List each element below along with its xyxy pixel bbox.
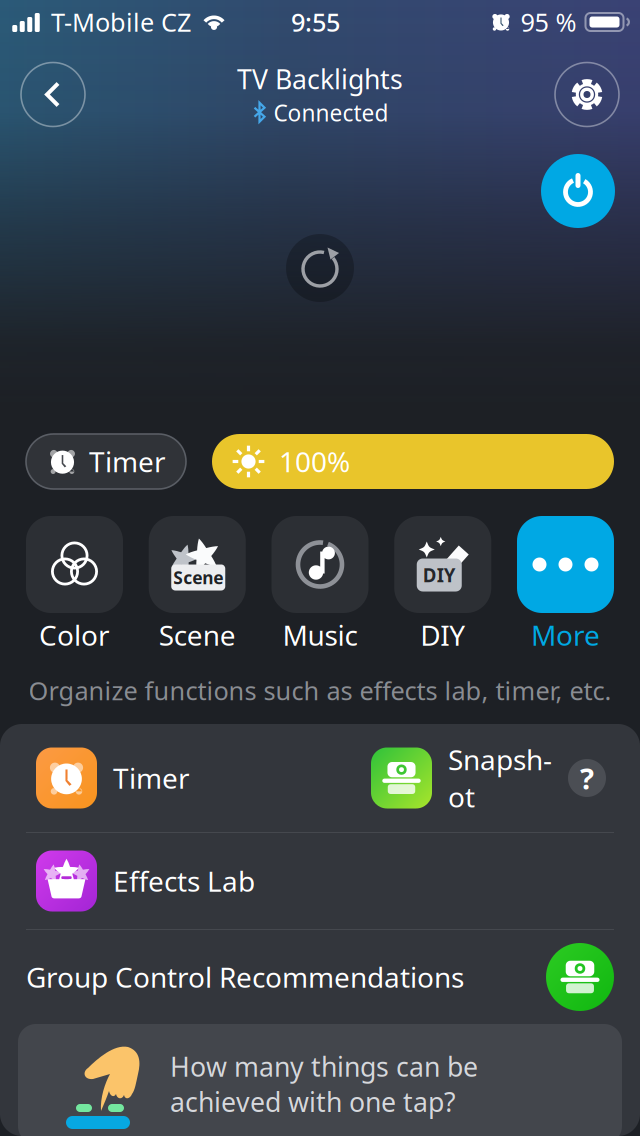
staticText: Timer (89, 443, 166, 480)
button[interactable]: Scene (149, 516, 246, 657)
staticText: Connected (273, 98, 388, 128)
staticText: Effects Lab (113, 862, 255, 900)
staticText: Group Control Recommendations (26, 958, 464, 996)
staticText: T-Mobile CZ (51, 5, 191, 39)
button[interactable]: Timer (36, 734, 190, 822)
staticText: DIY (420, 616, 465, 654)
staticText: How many things can be achieved with one… (170, 1049, 478, 1119)
button[interactable]: Timer (26, 434, 186, 489)
staticText: ? (580, 758, 594, 797)
button[interactable]: Back (21, 62, 85, 126)
button[interactable]: How many things can be achieved with one… (18, 1024, 622, 1136)
staticText: 100% (279, 443, 350, 480)
button[interactable]: Effects Lab (36, 837, 255, 925)
button[interactable]: Snapshot (546, 943, 614, 1011)
button[interactable]: Music (271, 516, 368, 657)
staticText: TV Backlights (237, 61, 403, 97)
staticText: More (531, 616, 600, 654)
staticText: Scene (159, 616, 236, 654)
staticText: Snapshot (448, 741, 552, 815)
staticText: 9:55 (291, 5, 340, 39)
staticText: 95 % (520, 5, 576, 39)
button[interactable]: Snapshot (371, 734, 606, 822)
button[interactable]: Power (541, 154, 615, 228)
staticText: Organize functions such as effects lab, … (28, 674, 611, 707)
button[interactable]: DIY (394, 516, 491, 657)
staticText: Timer (113, 759, 190, 797)
button[interactable]: More (517, 516, 614, 657)
staticText: Music (282, 616, 357, 654)
staticText: Color (39, 616, 110, 654)
button[interactable]: 100% (212, 434, 614, 489)
staticText: DIY (423, 563, 456, 587)
staticText: Scene (173, 566, 223, 589)
button[interactable]: Color (26, 516, 123, 657)
button[interactable]: Settings (555, 62, 619, 126)
